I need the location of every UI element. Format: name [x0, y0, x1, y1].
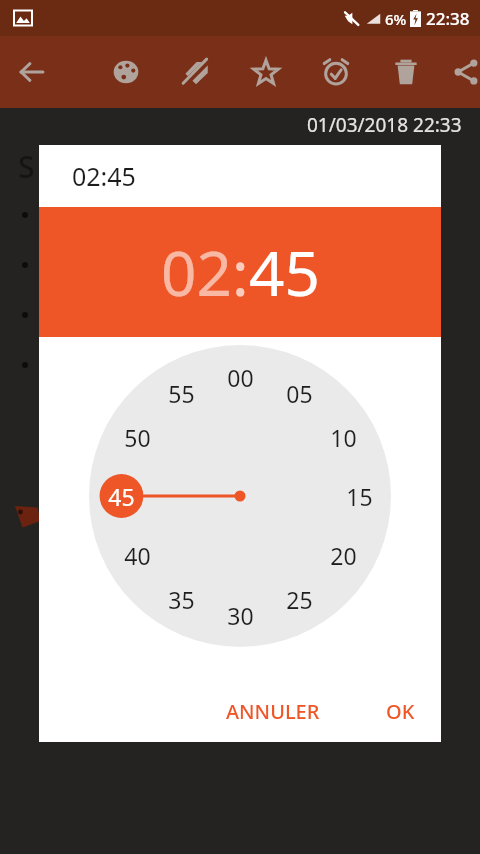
- staticText: 50: [124, 422, 151, 453]
- staticText: 10: [330, 422, 357, 453]
- button[interactable]: 02: [161, 230, 232, 314]
- staticText: 02:45: [72, 159, 136, 193]
- staticText: 20: [330, 540, 357, 571]
- staticText: 45: [108, 481, 135, 512]
- staticText: 40: [124, 540, 151, 571]
- staticText: 05: [286, 378, 313, 409]
- button[interactable]: Alarm: [312, 48, 360, 96]
- staticText: 00: [227, 362, 254, 393]
- button[interactable]: 45: [249, 230, 320, 314]
- staticText: ANNULER: [226, 698, 320, 725]
- button[interactable]: Share: [452, 48, 480, 96]
- button[interactable]: Favorite: [242, 48, 290, 96]
- button[interactable]: Remove tag: [172, 48, 220, 96]
- staticText: 35: [168, 584, 195, 615]
- staticText: 01/03/2018 22:33: [307, 112, 462, 138]
- staticText: 30: [227, 600, 254, 631]
- staticText: 15: [346, 481, 373, 512]
- button[interactable]: 00: [89, 345, 391, 647]
- button[interactable]: ANNULER: [214, 690, 332, 733]
- staticText: S: [18, 146, 35, 187]
- staticText: 22:38: [426, 7, 470, 30]
- staticText: 25: [286, 584, 313, 615]
- button[interactable]: Back: [0, 36, 64, 108]
- button[interactable]: Color: [102, 48, 150, 96]
- button[interactable]: Delete: [382, 48, 430, 96]
- button[interactable]: OK: [374, 690, 427, 733]
- staticText: 55: [168, 378, 195, 409]
- staticText: :: [232, 230, 249, 314]
- staticText: OK: [386, 698, 415, 725]
- staticText: 6%: [385, 9, 407, 29]
